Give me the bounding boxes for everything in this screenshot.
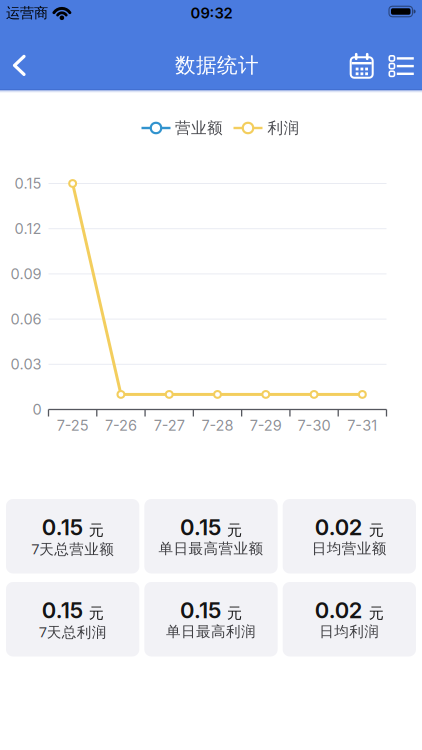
staticText: 0.02 xyxy=(315,597,363,623)
button[interactable]: 选择日期 xyxy=(347,50,377,82)
button[interactable]: 返回 xyxy=(2,47,36,83)
staticText: 日均营业额 xyxy=(312,539,387,558)
staticText: 0.02 xyxy=(315,514,363,540)
staticText: 运营商 xyxy=(6,4,48,22)
staticText: 元 xyxy=(369,604,384,623)
staticText: 7-28 xyxy=(201,417,233,434)
button[interactable]: 利润 xyxy=(233,114,299,142)
staticText: 0.06 xyxy=(10,310,41,328)
staticText: 7-29 xyxy=(250,417,282,434)
staticText: 7-25 xyxy=(57,417,89,434)
staticText: 元 xyxy=(227,604,242,623)
staticText: 0.09 xyxy=(10,265,41,283)
staticText: 利润 xyxy=(267,118,299,138)
button[interactable]: 数据列表 xyxy=(386,50,416,82)
staticText: 0.15 xyxy=(180,514,221,540)
staticText: 09:32 xyxy=(190,4,232,22)
staticText: 7-31 xyxy=(347,417,377,434)
staticText: 0.15 xyxy=(14,175,41,192)
staticText: 单日最高利润 xyxy=(166,622,256,641)
staticText: 0 xyxy=(32,401,41,418)
staticText: 0.12 xyxy=(14,220,41,238)
staticText: 0.15 xyxy=(42,514,83,540)
staticText: 7-27 xyxy=(154,417,185,434)
staticText: 元 xyxy=(227,521,242,540)
staticText: 7天总利润 xyxy=(39,622,107,642)
button[interactable]: 营业额 xyxy=(141,114,227,142)
staticText: 数据统计 xyxy=(175,52,259,78)
staticText: 0.15 xyxy=(42,597,83,623)
staticText: 0.03 xyxy=(10,355,41,373)
staticText: 日均利润 xyxy=(319,622,379,641)
staticText: 元 xyxy=(369,521,384,540)
staticText: 单日最高营业额 xyxy=(158,539,263,558)
staticText: 0.15 xyxy=(180,597,221,623)
staticText: 7-26 xyxy=(105,417,137,434)
staticText: 7天总营业额 xyxy=(31,539,114,559)
staticText: 元 xyxy=(89,521,104,540)
staticText: 7-30 xyxy=(298,417,331,434)
staticText: 营业额 xyxy=(175,118,223,138)
staticText: 元 xyxy=(89,604,104,623)
